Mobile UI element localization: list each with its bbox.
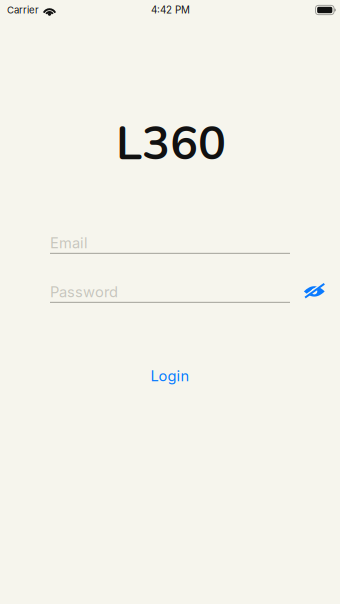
staticText: 4:42 PM (151, 4, 190, 16)
button[interactable]: Email (50, 234, 290, 260)
button[interactable]: Login (134, 361, 206, 391)
staticText: Carrier (7, 4, 39, 16)
staticText: L360 (116, 112, 226, 176)
button[interactable]: Password (50, 283, 290, 309)
button[interactable]: Show password (296, 274, 332, 308)
staticText: Email (50, 234, 88, 252)
staticText: Login (150, 367, 189, 385)
staticText: Password (50, 283, 118, 301)
